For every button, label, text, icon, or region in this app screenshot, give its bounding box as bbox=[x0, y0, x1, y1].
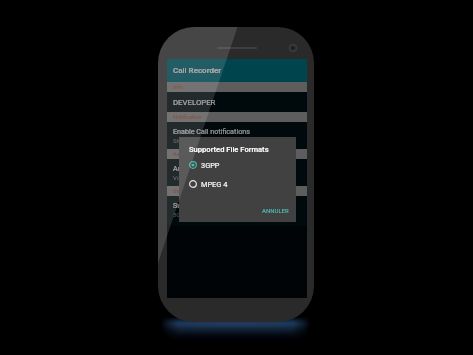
staticText: Supported File Formats bbox=[189, 145, 269, 154]
staticText: 3GPP bbox=[173, 211, 189, 218]
button[interactable]: Audio source bbox=[167, 159, 307, 186]
button[interactable]: ANNULER bbox=[258, 205, 293, 216]
staticText: ANNULER bbox=[262, 207, 289, 214]
other: Front camera bbox=[289, 44, 297, 52]
staticText: MPEG 4 bbox=[201, 180, 228, 189]
staticText: Enable Call notifications bbox=[173, 127, 250, 135]
button[interactable]: Enable Call notifications bbox=[167, 122, 307, 149]
staticText: Voice call bbox=[173, 174, 199, 181]
staticText: Audio source bbox=[173, 164, 216, 172]
button[interactable]: DEVELOPER bbox=[167, 92, 307, 112]
staticText: Show recording notification bbox=[173, 137, 247, 144]
staticText: DEVELOPER bbox=[173, 98, 216, 107]
button[interactable]: Supported File Formats bbox=[167, 196, 307, 226]
button[interactable]: MPEG 4 bbox=[189, 177, 306, 191]
button[interactable]: Call Recorder bbox=[167, 59, 307, 82]
staticText: Supported File Formats bbox=[173, 201, 248, 209]
staticText: 3GPP bbox=[201, 161, 220, 170]
staticText: Info bbox=[173, 84, 183, 90]
staticText: Notification bbox=[173, 114, 202, 120]
staticText: Audio bbox=[173, 151, 188, 157]
staticText: Call Recorder bbox=[173, 66, 222, 75]
button[interactable]: 3GPP bbox=[189, 158, 306, 172]
staticText: Storage bbox=[173, 188, 192, 194]
